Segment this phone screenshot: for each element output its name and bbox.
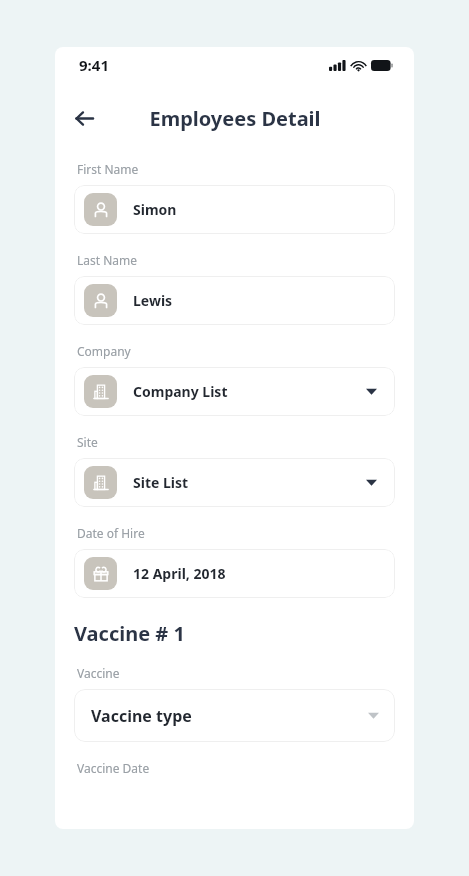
button[interactable]: Company List — [74, 367, 395, 416]
staticText: 9:41 — [79, 55, 109, 75]
staticText: Site List — [133, 473, 189, 492]
staticText: First Name — [77, 161, 139, 177]
staticText: Lewis — [133, 291, 173, 310]
button[interactable]: Back — [67, 101, 101, 135]
staticText: Vaccine type — [91, 705, 192, 727]
button[interactable]: Lewis — [74, 276, 395, 325]
staticText: 12 April, 2018 — [133, 564, 226, 583]
staticText: Vaccine Date — [77, 760, 150, 776]
staticText: Company List — [133, 382, 228, 401]
staticText: Site — [77, 434, 98, 450]
staticText: Vaccine — [77, 665, 120, 681]
button[interactable]: Vaccine type — [74, 689, 395, 742]
button[interactable]: 12 April, 2018 — [74, 549, 395, 598]
staticText: Company — [77, 343, 131, 359]
staticText: Employees Detail — [149, 105, 321, 132]
staticText: Simon — [133, 200, 177, 219]
staticText: Vaccine # 1 — [74, 620, 185, 647]
staticText: Date of Hire — [77, 525, 145, 541]
button[interactable]: Simon — [74, 185, 395, 234]
staticText: Last Name — [77, 252, 138, 268]
button[interactable]: Site List — [74, 458, 395, 507]
